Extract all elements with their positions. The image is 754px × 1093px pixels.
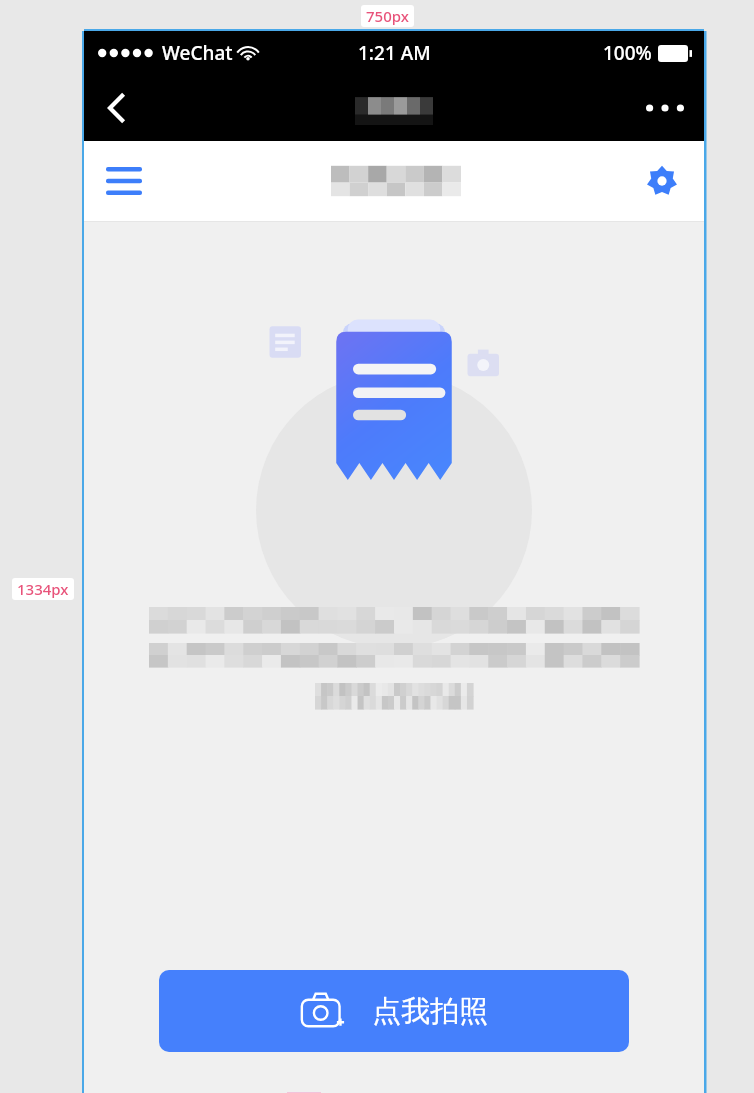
staticText: WeChat bbox=[162, 40, 233, 66]
staticText: 1:21 AM bbox=[358, 40, 431, 66]
button[interactable]: Menu bbox=[98, 155, 150, 207]
button[interactable]: Settings bbox=[636, 155, 688, 207]
button[interactable]: Back bbox=[94, 85, 140, 131]
staticText: 100% bbox=[603, 40, 652, 66]
staticText: 750px bbox=[366, 6, 409, 26]
button[interactable]: More options bbox=[642, 85, 688, 131]
staticText: 点我拍照 bbox=[372, 993, 488, 1030]
staticText: 1334px bbox=[17, 579, 69, 599]
button[interactable]: 点我拍照 bbox=[159, 970, 629, 1052]
